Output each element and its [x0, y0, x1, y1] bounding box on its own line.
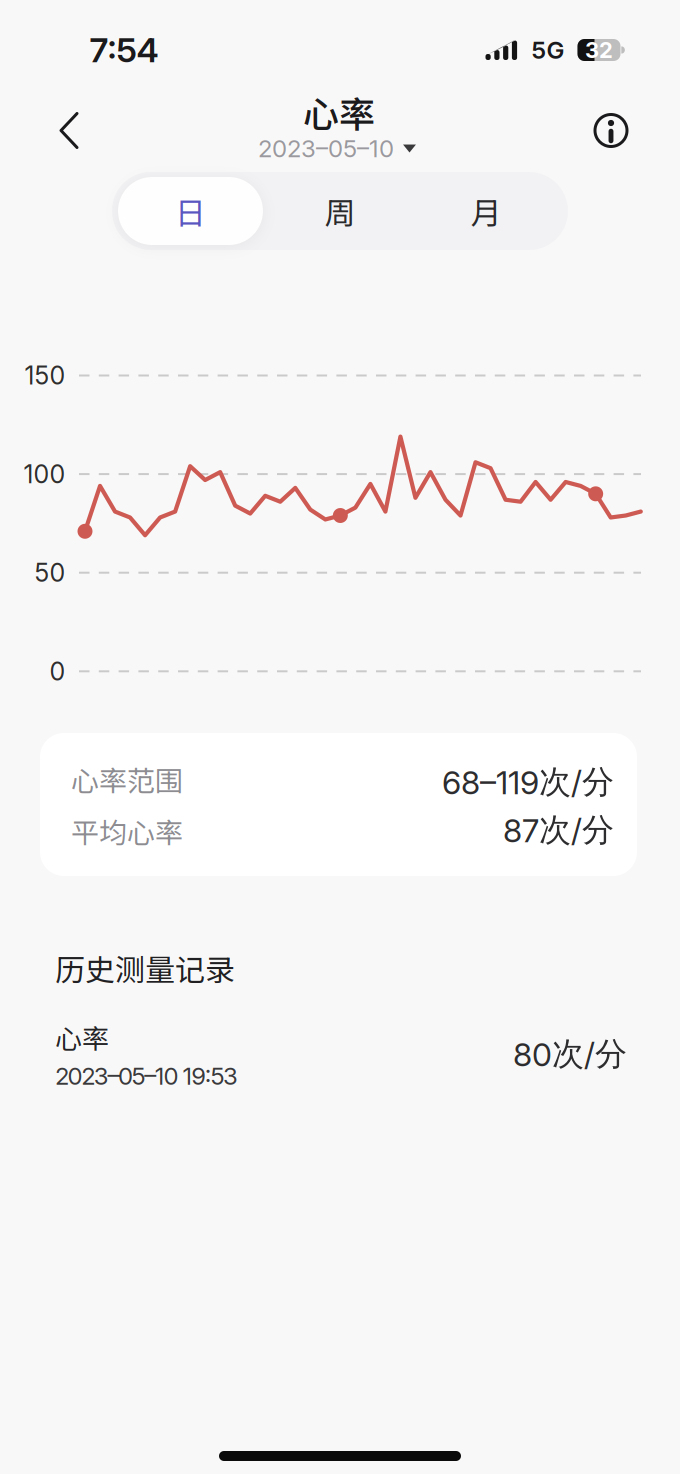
- staticText: 平均心率: [71, 811, 183, 851]
- button[interactable]: 日: [118, 177, 263, 245]
- staticText: 心率范围: [71, 759, 183, 799]
- staticText: 32: [585, 37, 613, 63]
- staticText: 5G: [531, 35, 564, 64]
- staticText: 心率: [303, 86, 375, 138]
- staticText: 日: [175, 189, 206, 233]
- staticText: 87次/分: [503, 810, 614, 850]
- staticText: 150: [24, 360, 65, 391]
- button[interactable]: Info: [589, 108, 633, 152]
- button[interactable]: 2023–05–10: [258, 134, 416, 163]
- staticText: 2023–05–10 19:53: [55, 1061, 238, 1090]
- staticText: 2023–05–10: [258, 134, 394, 163]
- staticText: 68–119次/分: [442, 762, 614, 802]
- button[interactable]: Back: [58, 110, 80, 150]
- staticText: 历史测量记录: [55, 946, 235, 990]
- button[interactable]: 月: [411, 172, 561, 250]
- staticText: 心率: [55, 1017, 109, 1057]
- button[interactable]: 周: [265, 172, 415, 250]
- staticText: 80次/分: [513, 1034, 627, 1074]
- staticText: 100: [23, 459, 65, 489]
- staticText: 50: [34, 558, 65, 588]
- staticText: 月: [470, 189, 501, 233]
- staticText: 7:54: [89, 29, 158, 70]
- button[interactable]: 心率: [40, 1004, 640, 1104]
- staticText: 周: [324, 189, 355, 233]
- staticText: 0: [49, 656, 65, 686]
